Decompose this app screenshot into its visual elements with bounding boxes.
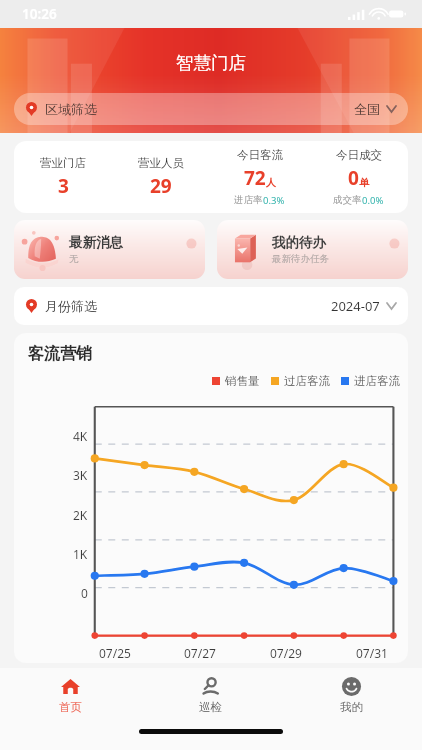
staticText: 0.3% <box>263 194 285 207</box>
button[interactable]: 过店客流 <box>271 374 330 388</box>
button[interactable]: 进店客流 <box>341 374 400 388</box>
button[interactable]: 我的 <box>281 668 422 722</box>
staticText: 今日客流 <box>237 148 283 162</box>
staticText: 单 <box>359 176 369 189</box>
button[interactable]: 首页 <box>0 668 140 722</box>
staticText: 07/31 <box>356 645 388 661</box>
staticText: 4K <box>73 428 88 444</box>
button[interactable]: 销售量 <box>212 374 260 388</box>
staticText: 最新待办任务 <box>272 253 329 265</box>
staticText: 人 <box>266 176 276 189</box>
staticText: 客流营销 <box>28 344 92 364</box>
staticText: 10:26 <box>22 5 57 23</box>
staticText: 最新消息 <box>69 234 123 251</box>
staticText: 营业人员 <box>138 156 184 170</box>
staticText: 2024-07 <box>331 297 380 315</box>
staticText: 过店客流 <box>284 374 330 388</box>
staticText: 我的待办 <box>272 234 326 251</box>
staticText: 月份筛选 <box>45 298 97 314</box>
button[interactable]: 最新消息 <box>14 220 205 279</box>
button[interactable]: 月份筛选 <box>14 287 408 325</box>
button[interactable]: 巡检 <box>140 668 281 722</box>
staticText: 智慧门店 <box>176 52 246 74</box>
button[interactable]: 区域筛选 <box>14 93 408 125</box>
staticText: 首页 <box>59 700 82 714</box>
button[interactable]: 今日客流 <box>210 141 309 213</box>
staticText: 巡检 <box>199 700 222 714</box>
staticText: 成交率 <box>333 194 362 206</box>
staticText: 我的 <box>340 700 363 714</box>
button[interactable]: 今日成交 <box>309 141 408 213</box>
staticText: 无 <box>69 253 79 265</box>
staticText: 0.0% <box>362 194 384 207</box>
staticText: 进店率 <box>234 194 263 206</box>
staticText: 2K <box>73 507 88 523</box>
staticText: 营业门店 <box>40 156 86 170</box>
staticText: 07/25 <box>99 645 131 661</box>
staticText: 72 <box>244 165 266 191</box>
staticText: 今日成交 <box>336 148 382 162</box>
staticText: 1K <box>73 546 88 562</box>
staticText: 07/29 <box>270 645 302 661</box>
staticText: 进店客流 <box>354 374 400 388</box>
staticText: 0 <box>348 165 359 191</box>
button[interactable]: 我的待办 <box>217 220 408 279</box>
staticText: 07/27 <box>184 645 216 661</box>
staticText: 区域筛选 <box>45 101 97 117</box>
staticText: 29 <box>150 173 172 199</box>
staticText: 3K <box>73 467 88 483</box>
staticText: 3 <box>58 173 69 199</box>
staticText: 全国 <box>354 101 380 117</box>
staticText: 0 <box>81 585 88 601</box>
button[interactable]: 营业门店 <box>14 141 112 213</box>
button[interactable]: 营业人员 <box>112 141 210 213</box>
staticText: 销售量 <box>225 374 260 388</box>
